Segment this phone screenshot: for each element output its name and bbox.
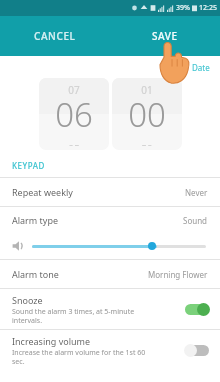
button[interactable]: Toggle on [184, 302, 210, 316]
staticText: Increase the alarm volume for the 1st 60… [12, 348, 146, 366]
staticText: Sound [183, 215, 208, 226]
staticText: Snooze [12, 294, 43, 306]
button[interactable]: Snooze [0, 289, 220, 329]
staticText: 39% [176, 3, 190, 13]
button[interactable]: 01 [112, 78, 182, 150]
staticText: Increasing volume [12, 335, 91, 347]
staticText: Sound the alarm 3 times, at 5-minute int… [12, 307, 135, 325]
button[interactable]: Alarm tone [0, 260, 220, 288]
staticText: 05 [68, 142, 80, 146]
button[interactable] [148, 242, 156, 250]
button[interactable]: Increasing volume [0, 330, 220, 370]
button[interactable]: Toggle off [184, 343, 210, 357]
staticText: Never [185, 187, 208, 198]
staticText: Alarm type [12, 214, 59, 226]
button[interactable]: SAVE [110, 16, 220, 56]
staticText: CANCEL [34, 29, 76, 43]
staticText: 00 [128, 92, 166, 137]
staticText: 06 [55, 92, 93, 137]
staticText: 07 [68, 83, 80, 97]
button[interactable]: Volume [0, 233, 220, 259]
staticText: Date [192, 62, 210, 73]
staticText: Alarm tone [12, 268, 59, 280]
button[interactable]: CANCEL [0, 16, 110, 56]
button[interactable]: Date [190, 60, 212, 75]
button[interactable]: Alarm type [0, 207, 220, 233]
staticText: SAVE [152, 29, 178, 43]
button[interactable]: Repeat weekly [0, 178, 220, 206]
staticText: 01 [141, 83, 153, 97]
other: Volume [12, 240, 24, 252]
staticText: 59 [141, 142, 153, 146]
staticText: 12:25 [199, 3, 217, 13]
button[interactable]: 07 [39, 78, 109, 150]
staticText: Morning Flower [148, 269, 208, 280]
other: Tap SAVE [152, 38, 192, 84]
staticText: KEYPAD [12, 160, 45, 171]
staticText: Repeat weekly [12, 186, 73, 198]
